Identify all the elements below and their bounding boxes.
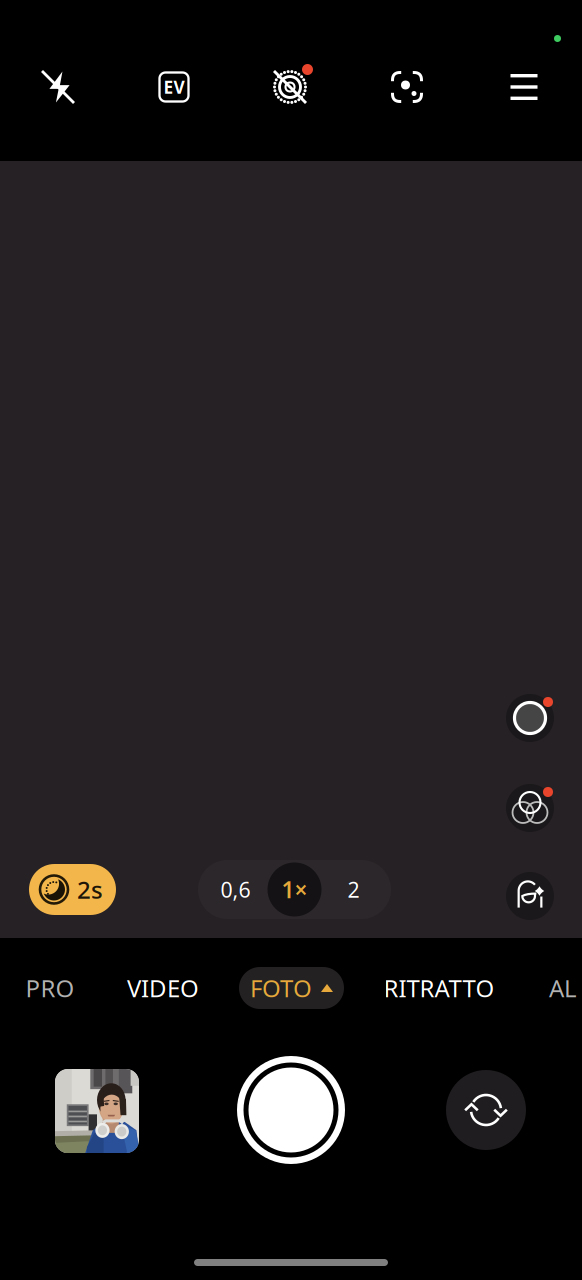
button[interactable]: Take photo [237, 1056, 345, 1164]
staticText: 2s [77, 874, 103, 905]
button[interactable]: AL [549, 966, 582, 1010]
staticText: PRO [25, 972, 74, 1004]
button[interactable]: Beauty mode [501, 867, 559, 925]
button[interactable]: Lens scan [379, 59, 435, 115]
button[interactable]: VIDEO [117, 966, 209, 1010]
staticText: 1× [281, 874, 307, 904]
button[interactable]: Photo gallery [55, 1069, 139, 1153]
button[interactable]: Colour filters [501, 779, 559, 837]
staticText: AL [549, 972, 577, 1004]
staticText: FOTO [250, 972, 312, 1004]
button[interactable]: Exposure compensation [146, 59, 202, 115]
button[interactable]: More settings [496, 59, 552, 115]
staticText: RITRATTO [383, 972, 494, 1004]
button[interactable]: 0,6 [198, 860, 391, 919]
staticText: VIDEO [127, 972, 199, 1004]
button[interactable]: RITRATTO [379, 966, 499, 1010]
button[interactable]: Aperture [501, 689, 559, 747]
button[interactable]: 2s [29, 864, 116, 915]
staticText: 2 [347, 875, 359, 904]
button[interactable]: FOTO [239, 967, 344, 1009]
button[interactable]: Flash off [30, 59, 86, 115]
button[interactable]: AI scene detection off [262, 59, 318, 115]
button[interactable]: PRO [12, 966, 88, 1010]
staticText: 0,6 [220, 875, 250, 904]
staticText: EV [163, 75, 184, 98]
button[interactable]: Switch camera [446, 1070, 526, 1150]
